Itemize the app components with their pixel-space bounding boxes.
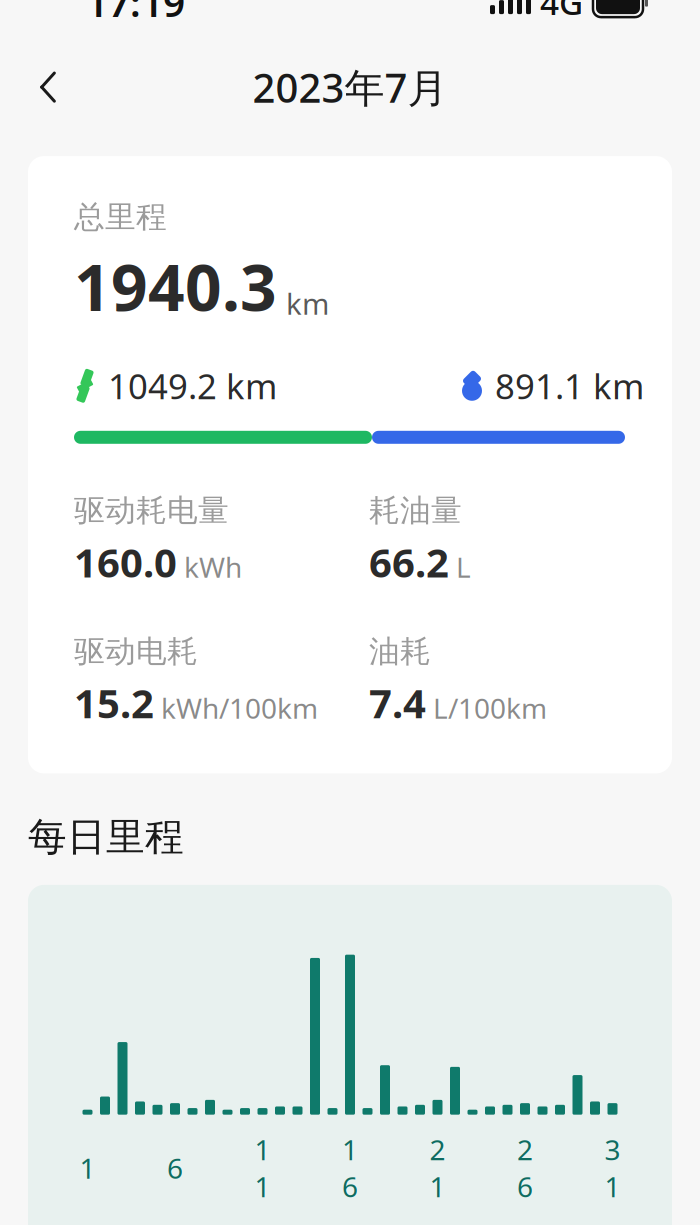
staticText: kWh/100km — [161, 689, 318, 726]
staticText: L — [456, 548, 471, 586]
staticText: 油耗 — [369, 633, 431, 670]
staticText: 31 — [604, 1131, 620, 1205]
staticText: 21 — [429, 1131, 445, 1205]
staticText: 4G — [540, 0, 583, 24]
staticText: km — [286, 284, 329, 323]
staticText: 2023年7月 — [252, 61, 447, 114]
staticText: 1940.3 — [74, 244, 277, 329]
staticText: 总里程 — [74, 198, 167, 236]
staticText: 11 — [254, 1131, 270, 1205]
staticText: kWh — [184, 548, 242, 586]
staticText: 耗油量 — [369, 492, 462, 529]
staticText: 6 — [167, 1149, 183, 1186]
staticText: 1049.2 km — [108, 363, 277, 409]
staticText: 160.0 — [74, 535, 177, 589]
staticText: 每日里程 — [28, 813, 184, 861]
staticText: L/100km — [433, 689, 547, 726]
staticText: 66.2 — [369, 535, 449, 589]
staticText: 15.2 — [74, 676, 154, 729]
staticText: 26 — [517, 1131, 533, 1205]
button[interactable]: Back — [12, 51, 84, 123]
staticText: 驱动电耗 — [74, 633, 198, 670]
staticText: 891.1 km — [495, 363, 644, 409]
staticText: 7.4 — [369, 676, 426, 729]
staticText: 17:19 — [86, 0, 185, 28]
staticText: 驱动耗电量 — [74, 492, 229, 529]
staticText: 1 — [79, 1149, 95, 1186]
staticText: 16 — [342, 1131, 358, 1205]
